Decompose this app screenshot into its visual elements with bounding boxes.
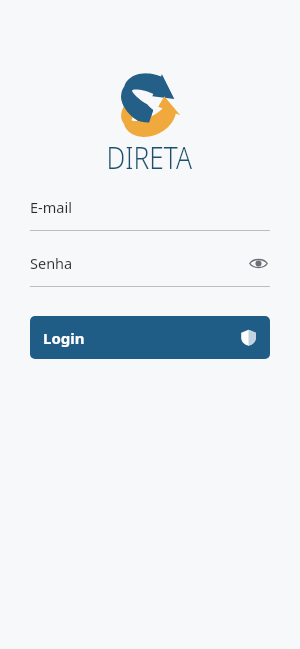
staticText: Login: [43, 328, 85, 348]
button[interactable]: Login: [30, 316, 270, 359]
button[interactable]: Senha: [30, 251, 270, 275]
staticText: Senha: [30, 253, 73, 273]
staticText: E-mail: [30, 197, 72, 217]
staticText: DIRETA: [107, 136, 192, 178]
button[interactable]: Show password: [246, 251, 270, 275]
button[interactable]: E-mail: [30, 195, 270, 219]
